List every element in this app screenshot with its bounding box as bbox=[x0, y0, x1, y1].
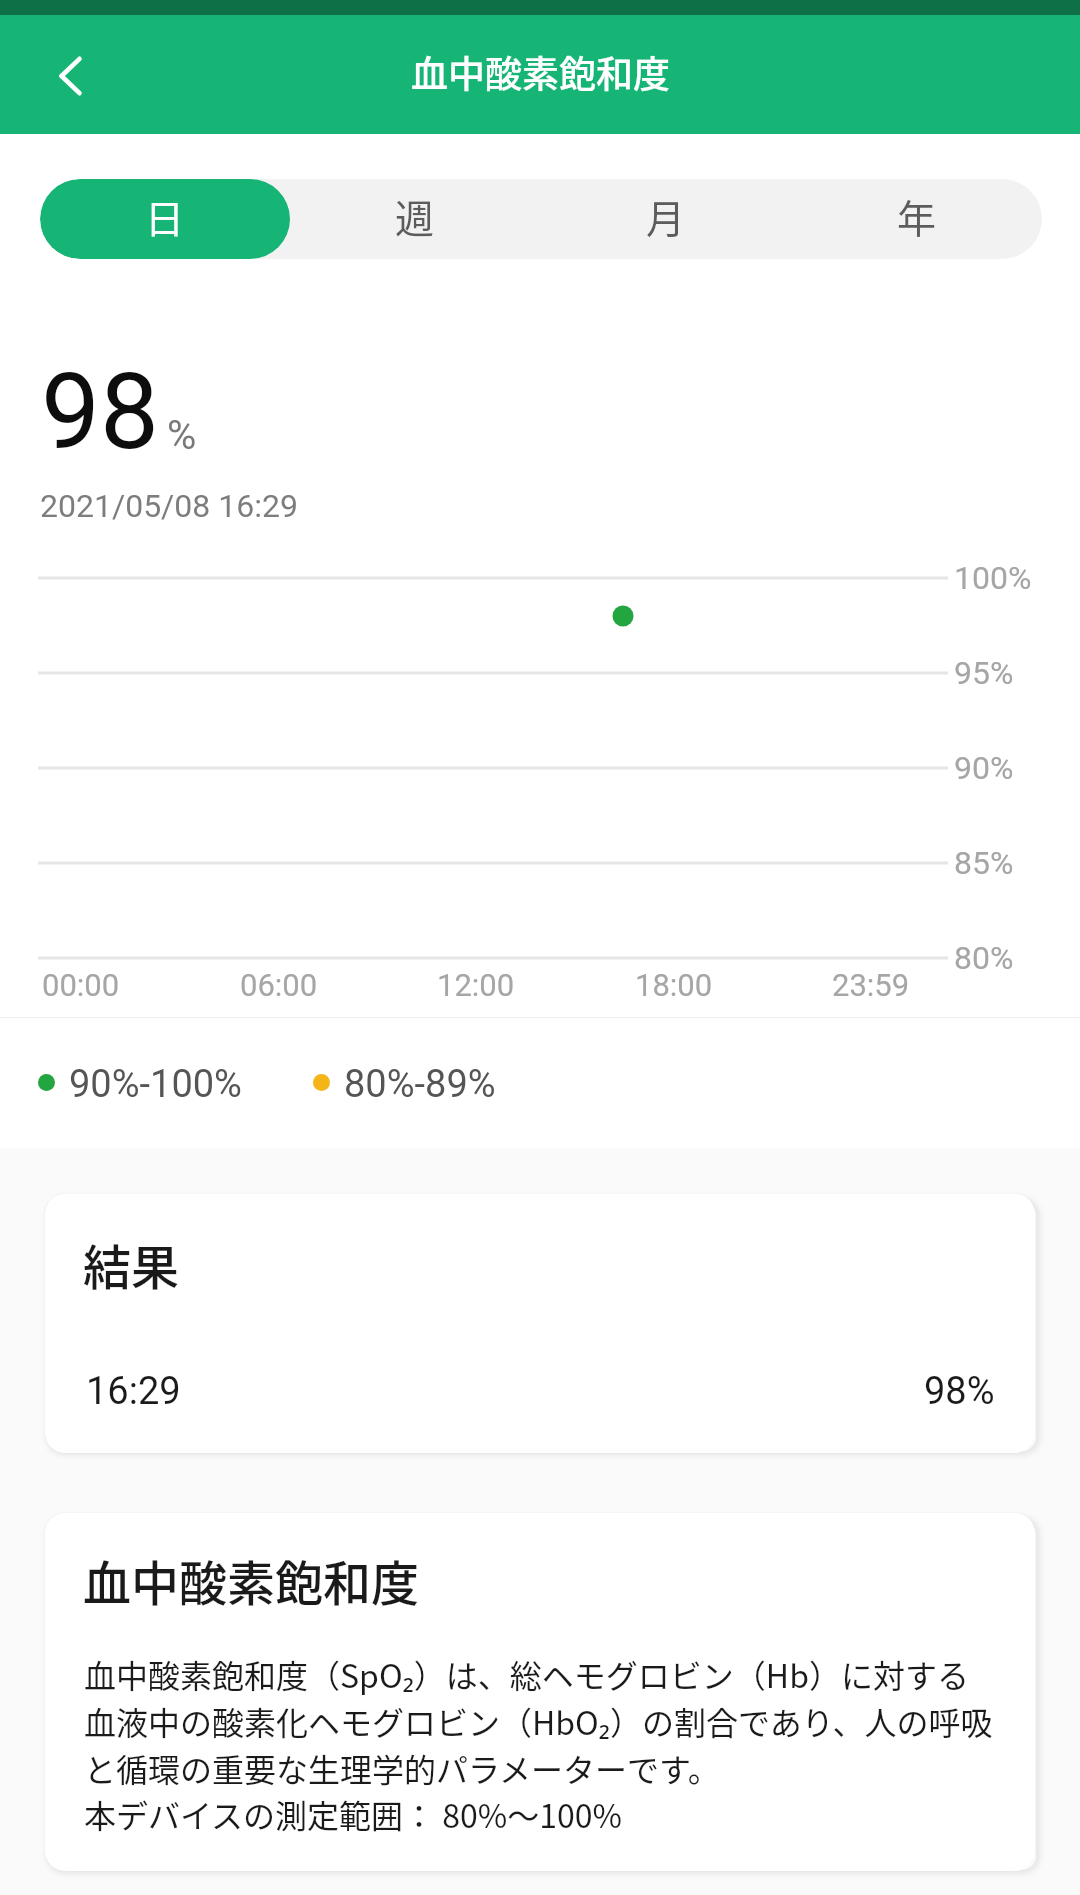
staticText: 2021/05/08 16:29 bbox=[40, 487, 298, 525]
staticText: 90%-100% bbox=[69, 1062, 242, 1107]
button[interactable]: 血中酸素飽和度 bbox=[45, 1513, 1035, 1871]
staticText: 95% bbox=[954, 654, 1014, 692]
staticText: 血中酸素飽和度（SpO₂）は、総ヘモグロビン（Hb）に対する 血液中の酸素化ヘモ… bbox=[84, 1651, 993, 1837]
staticText: 90% bbox=[954, 749, 1014, 787]
staticText: 18:00 bbox=[635, 967, 713, 1003]
staticText: 血中酸素飽和度 bbox=[411, 45, 670, 99]
staticText: 80% bbox=[954, 939, 1014, 977]
staticText: 80%-89% bbox=[344, 1062, 496, 1107]
staticText: 06:00 bbox=[240, 967, 318, 1003]
staticText: 00:00 bbox=[42, 967, 120, 1003]
staticText: 85% bbox=[954, 844, 1014, 882]
staticText: 12:00 bbox=[437, 967, 515, 1003]
staticText: 月 bbox=[646, 188, 686, 244]
button[interactable]: 日 bbox=[40, 179, 290, 259]
staticText: 98% bbox=[924, 1369, 995, 1414]
staticText: 日 bbox=[145, 188, 185, 244]
button[interactable]: 年 bbox=[791, 179, 1042, 259]
staticText: 結果 bbox=[83, 1229, 180, 1299]
staticText: 16:29 bbox=[86, 1369, 181, 1414]
staticText: 血中酸素飽和度 bbox=[83, 1545, 420, 1615]
staticText: 23:59 bbox=[832, 967, 910, 1003]
staticText: 98 bbox=[41, 351, 160, 474]
button[interactable]: 週 bbox=[290, 179, 540, 259]
staticText: 100% bbox=[954, 559, 1032, 597]
button[interactable]: Back bbox=[0, 15, 124, 134]
button[interactable]: 月 bbox=[540, 179, 791, 259]
staticText: 週 bbox=[395, 188, 435, 244]
staticText: 年 bbox=[897, 188, 937, 244]
staticText: % bbox=[167, 412, 197, 459]
button[interactable]: 結果 bbox=[45, 1194, 1035, 1453]
